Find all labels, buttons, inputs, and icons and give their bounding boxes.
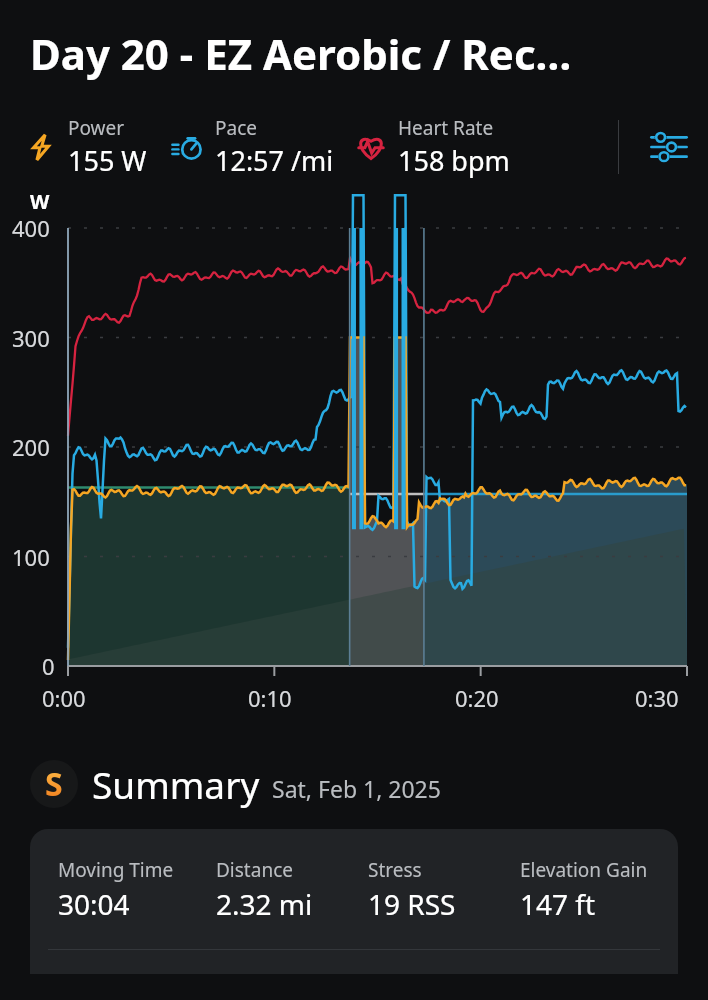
button[interactable]: Pace (171, 115, 334, 179)
staticText: 155 W (68, 142, 147, 179)
staticText: 0:10 (248, 683, 292, 713)
staticText: 0:00 (42, 683, 86, 713)
button[interactable]: Moving Time (30, 829, 678, 974)
staticText: W (30, 188, 50, 215)
staticText: Summary (92, 759, 260, 809)
staticText: Distance (216, 857, 293, 883)
staticText: 147 ft (520, 885, 596, 923)
button[interactable]: Heart Rate (354, 115, 510, 179)
staticText: Heart Rate (398, 115, 494, 141)
staticText: Power (68, 115, 125, 141)
staticText: 2.32 mi (216, 885, 313, 923)
button[interactable]: Day 20 - EZ Aerobic / Rec… (0, 0, 708, 106)
staticText: S (45, 762, 63, 806)
staticText: 0:30 (635, 683, 679, 713)
staticText: Elevation Gain (520, 857, 648, 883)
staticText: 100 (12, 542, 50, 572)
staticText: 12:57 /mi (215, 142, 334, 179)
staticText: Moving Time (58, 857, 174, 883)
button[interactable]: S (30, 759, 708, 809)
staticText: 0 (42, 651, 55, 681)
staticText: 30:04 (58, 885, 130, 923)
button[interactable]: Chart settings (630, 106, 708, 188)
staticText: Stress (368, 857, 422, 883)
staticText: Pace (215, 115, 257, 141)
staticText: 300 (12, 323, 50, 353)
staticText: Day 20 - EZ Aerobic / Rec… (30, 25, 572, 82)
button[interactable]: Power (24, 115, 147, 179)
staticText: 158 bpm (398, 142, 510, 179)
staticText: Sat, Feb 1, 2025 (272, 773, 441, 804)
staticText: 400 (12, 213, 50, 243)
staticText: 19 RSS (368, 885, 456, 923)
staticText: 200 (12, 432, 50, 462)
staticText: 0:20 (455, 683, 499, 713)
